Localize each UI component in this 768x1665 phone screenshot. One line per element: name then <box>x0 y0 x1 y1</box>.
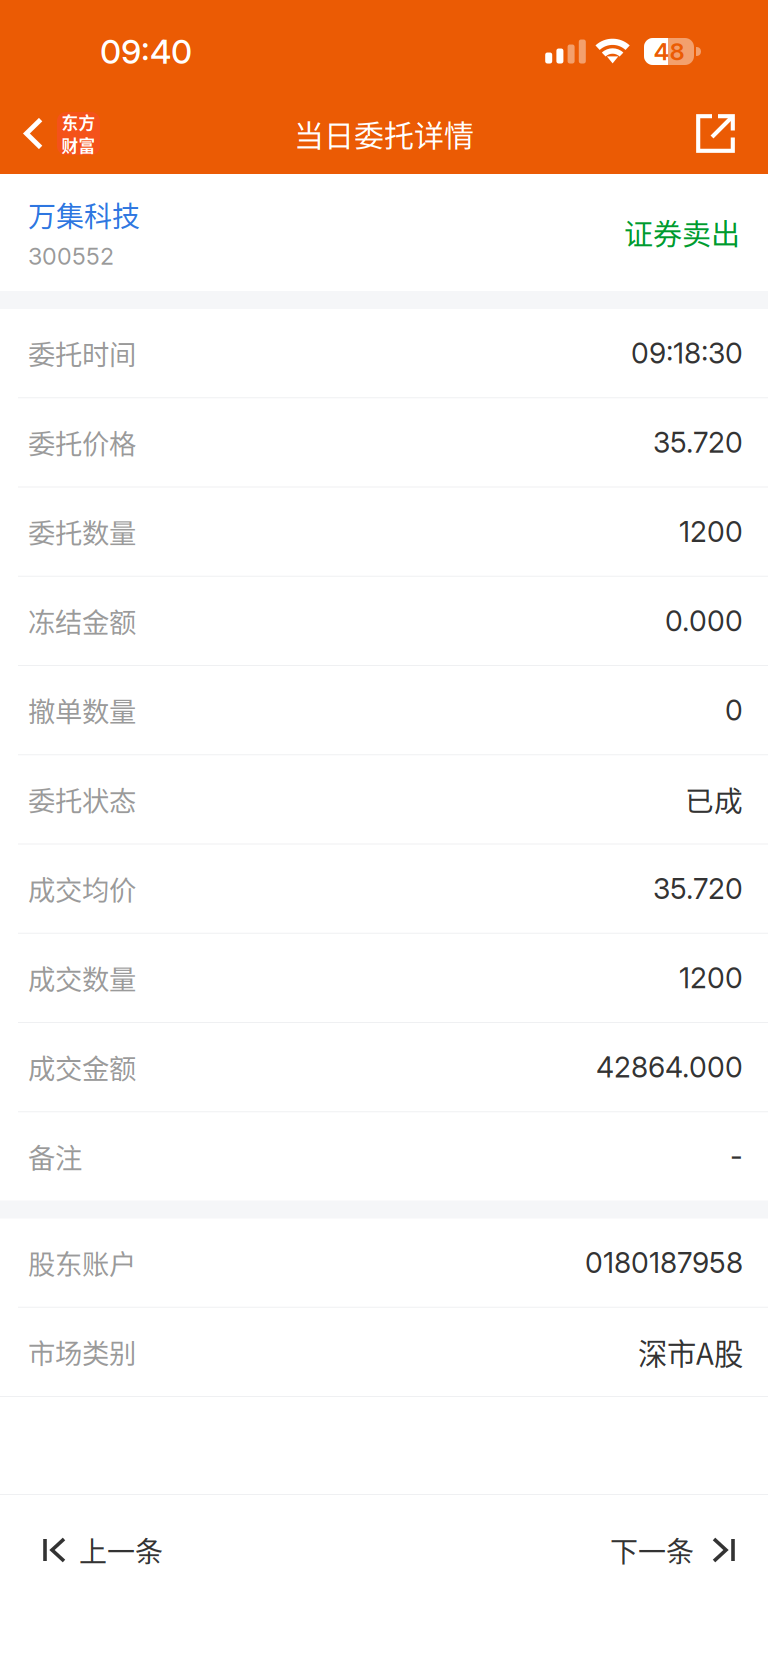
button[interactable]: 分享 <box>680 93 768 174</box>
staticText: 1200 <box>679 961 743 995</box>
staticText: 委托价格 <box>28 423 136 462</box>
staticText: 备注 <box>28 1137 82 1176</box>
staticText: 当日委托详情 <box>294 112 474 155</box>
staticText: 股东账户 <box>28 1243 136 1282</box>
button[interactable]: 返回 <box>0 93 110 174</box>
staticText: 300552 <box>28 242 114 270</box>
staticText: 冻结金额 <box>28 601 136 641</box>
staticText: 42864.000 <box>596 1050 743 1084</box>
staticText: 09:18:30 <box>631 336 743 370</box>
staticText: 委托数量 <box>28 512 136 551</box>
staticText: 已成 <box>685 779 743 820</box>
staticText: 撤单数量 <box>28 690 136 730</box>
staticText: 东方 <box>61 110 95 134</box>
staticText: 48 <box>653 37 684 66</box>
staticText: 0.000 <box>665 604 743 638</box>
staticText: 委托状态 <box>28 780 136 819</box>
staticText: 上一条 <box>79 1530 163 1570</box>
button[interactable]: 上一条 <box>0 1495 193 1605</box>
staticText: 成交均价 <box>28 869 136 908</box>
staticText: 委托时间 <box>28 333 136 373</box>
staticText: 09:40 <box>100 31 192 72</box>
staticText: 0 <box>725 693 743 727</box>
staticText: - <box>730 1139 743 1174</box>
staticText: 0180187958 <box>585 1245 743 1280</box>
staticText: 1200 <box>679 514 743 549</box>
staticText: 市场类别 <box>28 1332 136 1372</box>
staticText: 35.720 <box>653 425 743 460</box>
staticText: 成交数量 <box>28 958 136 998</box>
staticText: 成交金额 <box>28 1047 136 1087</box>
staticText: 下一条 <box>610 1530 694 1570</box>
staticText: 万集科技 <box>28 195 140 235</box>
staticText: 财富 <box>61 133 95 157</box>
button[interactable]: 下一条 <box>580 1495 768 1605</box>
staticText: 证券卖出 <box>624 211 740 254</box>
staticText: 35.720 <box>653 871 743 906</box>
staticText: 深市A股 <box>638 1331 743 1373</box>
